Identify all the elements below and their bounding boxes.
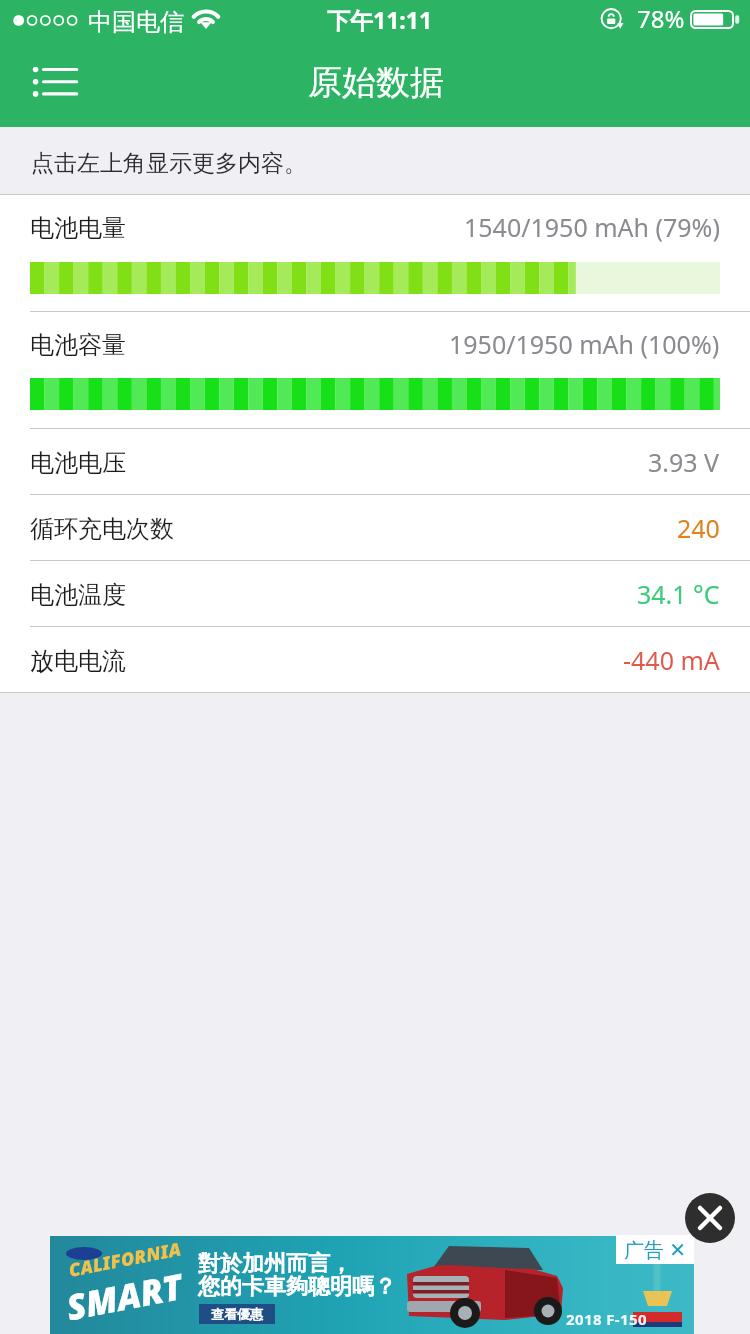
button[interactable]: 电池容量 [0, 312, 750, 428]
staticText: 您的卡車夠聰明嗎？ [198, 1273, 396, 1301]
staticText: -440 mA [623, 643, 720, 677]
staticText: 电池容量 [30, 330, 126, 360]
staticText: 3.93 V [648, 445, 720, 479]
button[interactable]: 放电电流 [0, 627, 750, 692]
staticText: 中国电信 [88, 7, 184, 37]
button[interactable]: 电池电压 [0, 429, 750, 494]
button[interactable]: 电池温度 [0, 561, 750, 626]
staticText: CALIFORNIA [67, 1236, 183, 1283]
staticText: 對於加州而言， [198, 1250, 352, 1278]
staticText: 78% [637, 2, 685, 35]
staticText: 2018 F-150 [566, 1309, 647, 1329]
staticText: 240 [677, 511, 720, 545]
staticText: SMART [62, 1262, 186, 1331]
staticText: 广告 ✕ [624, 1236, 686, 1263]
button[interactable]: Advertisement [50, 1236, 694, 1334]
button[interactable]: Close ad [685, 1193, 735, 1243]
staticText: 34.1 °C [637, 577, 720, 611]
staticText: 原始数据 [308, 61, 444, 104]
button[interactable]: 循环充电次数 [0, 495, 750, 560]
staticText: 电池电压 [30, 448, 126, 478]
staticText: 点击左上角显示更多内容。 [31, 149, 307, 178]
staticText: 循环充电次数 [30, 514, 174, 544]
staticText: 放电电流 [30, 646, 126, 676]
staticText: 下午11:11 [327, 4, 433, 35]
staticText: 查看優惠 [211, 1306, 263, 1322]
staticText: 1540/1950 mAh (79%) [464, 210, 720, 244]
button[interactable]: Menu [4, 54, 78, 127]
staticText: 电池温度 [30, 580, 126, 610]
button[interactable]: Ad info [616, 1235, 694, 1264]
staticText: 1950/1950 mAh (100%) [449, 327, 720, 361]
button[interactable]: 电池电量 [0, 195, 750, 311]
staticText: 电池电量 [30, 213, 126, 243]
button[interactable]: 查看優惠 [199, 1304, 275, 1324]
